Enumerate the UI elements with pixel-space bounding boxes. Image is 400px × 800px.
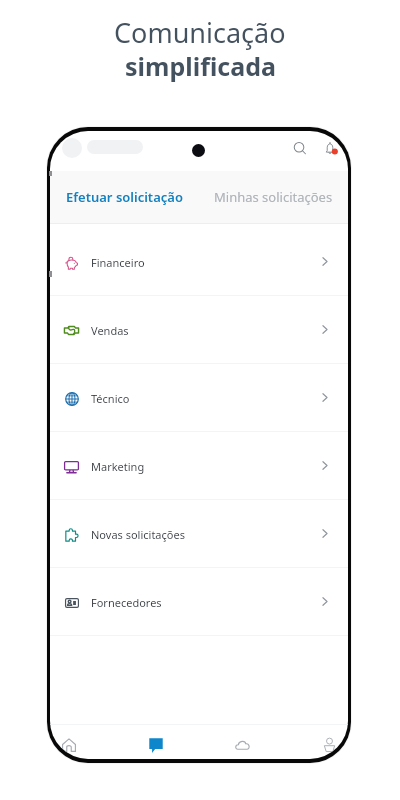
staticText: Marketing <box>91 459 145 474</box>
button[interactable]: Técnico <box>50 364 348 432</box>
staticText: Vendas <box>91 323 129 338</box>
button[interactable]: Efetuar solicitação <box>50 171 199 223</box>
staticText: Minhas solicitações <box>214 188 333 206</box>
staticText: Técnico <box>91 391 130 406</box>
staticText: Novas solicitações <box>91 527 185 542</box>
staticText: simplificada <box>125 49 276 83</box>
button[interactable]: Vendas <box>50 296 348 364</box>
button[interactable]: Marketing <box>50 432 348 500</box>
staticText: Comunicação <box>114 14 286 51</box>
button[interactable]: Perfil <box>316 729 342 759</box>
button[interactable]: Nuvem <box>229 729 255 759</box>
button[interactable]: Notificações <box>317 134 345 162</box>
button[interactable]: Financeiro <box>50 228 348 296</box>
button[interactable]: Minhas solicitações <box>199 171 348 223</box>
staticText: Efetuar solicitação <box>66 188 183 206</box>
staticText: Financeiro <box>91 255 145 270</box>
button[interactable]: Mensagens <box>143 729 169 759</box>
staticText: Fornecedores <box>91 595 162 610</box>
button[interactable]: Início <box>56 729 82 759</box>
button[interactable]: Novas solicitações <box>50 500 348 568</box>
button[interactable]: Fornecedores <box>50 568 348 636</box>
button[interactable]: Buscar <box>286 134 314 162</box>
